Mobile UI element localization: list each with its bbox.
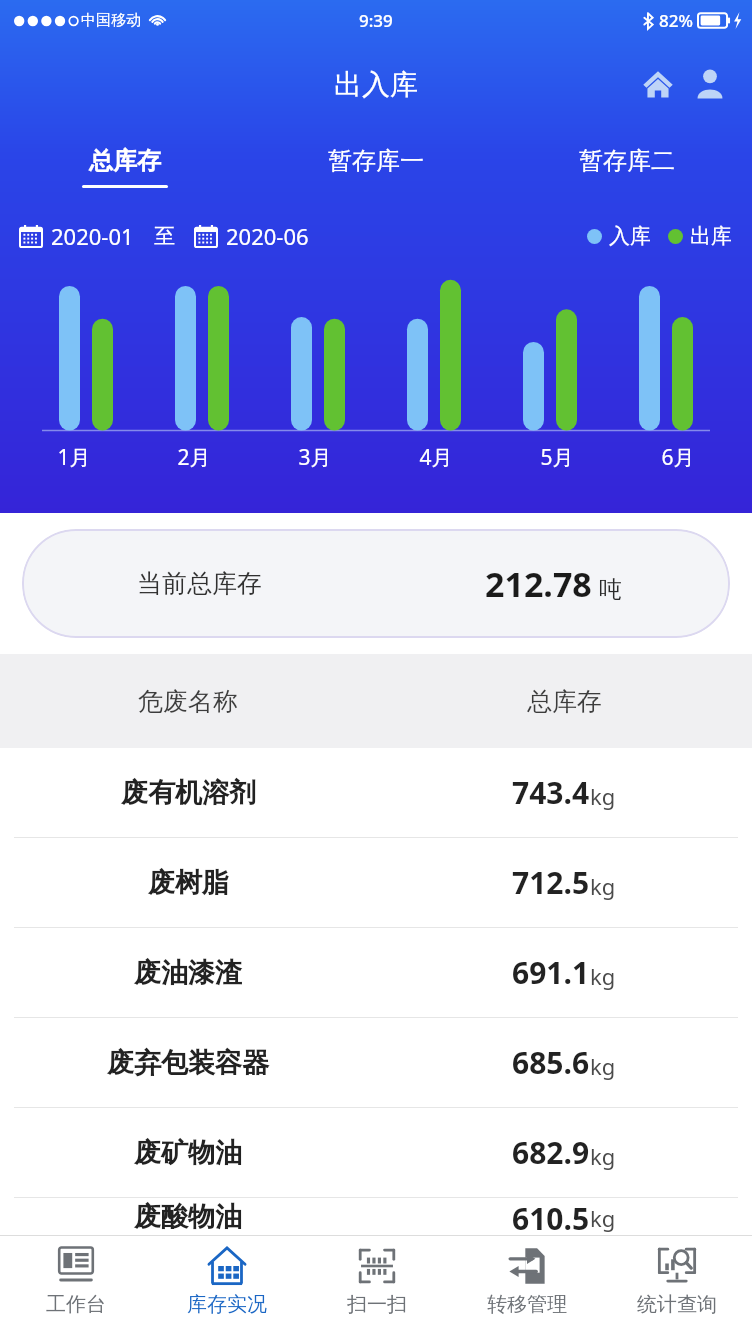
- staticText: kg: [590, 1141, 616, 1171]
- staticText: 682.9: [512, 1132, 590, 1173]
- staticText: 中国移动: [81, 11, 141, 30]
- button[interactable]: 统计查询: [602, 1236, 752, 1334]
- staticText: 6月: [661, 443, 695, 472]
- button[interactable]: 暂存库一: [250, 128, 501, 206]
- staticText: 扫一扫: [347, 1292, 407, 1317]
- staticText: 当前总库存: [137, 568, 262, 599]
- button[interactable]: Profile: [686, 60, 734, 108]
- staticText: 总库存: [89, 146, 161, 176]
- staticText: kg: [590, 781, 616, 811]
- staticText: 743.4: [512, 772, 590, 813]
- staticText: 82%: [659, 9, 693, 32]
- staticText: kg: [590, 961, 616, 991]
- button[interactable]: 工作台: [0, 1236, 151, 1334]
- button[interactable]: 库存实况: [151, 1236, 302, 1334]
- button[interactable]: 扫一扫: [302, 1236, 452, 1334]
- staticText: 691.1: [512, 952, 590, 993]
- staticText: 废酸物油: [134, 1200, 242, 1234]
- staticText: 入库: [609, 223, 651, 249]
- staticText: 统计查询: [637, 1292, 717, 1317]
- button[interactable]: 废酸物油: [0, 1198, 752, 1235]
- staticText: kg: [590, 1051, 616, 1081]
- button[interactable]: Home: [634, 60, 682, 108]
- button[interactable]: 当前总库存: [22, 529, 730, 638]
- staticText: 1月: [57, 443, 91, 472]
- button[interactable]: 废弃包装容器: [0, 1018, 752, 1107]
- staticText: 5月: [540, 443, 574, 472]
- button[interactable]: 总库存: [0, 128, 250, 206]
- staticText: 出库: [690, 223, 732, 249]
- staticText: 废油漆渣: [134, 956, 242, 990]
- button[interactable]: 废矿物油: [0, 1108, 752, 1197]
- staticText: 212.78: [485, 561, 592, 607]
- staticText: 吨: [599, 575, 622, 604]
- staticText: 工作台: [46, 1292, 106, 1317]
- staticText: 废有机溶剂: [121, 776, 256, 810]
- staticText: 暂存库二: [579, 146, 675, 176]
- button[interactable]: 废有机溶剂: [0, 748, 752, 837]
- staticText: 2020-06: [226, 221, 309, 251]
- staticText: 危废名称: [138, 686, 238, 717]
- staticText: 库存实况: [187, 1292, 267, 1317]
- staticText: kg: [590, 1203, 616, 1233]
- button[interactable]: 废油漆渣: [0, 928, 752, 1017]
- button[interactable]: 废树脂: [0, 838, 752, 927]
- staticText: 废弃包装容器: [107, 1046, 269, 1080]
- button[interactable]: 暂存库二: [501, 128, 752, 206]
- staticText: 712.5: [512, 862, 590, 903]
- staticText: 转移管理: [487, 1292, 567, 1317]
- staticText: 暂存库一: [328, 146, 424, 176]
- staticText: 9:39: [359, 9, 393, 32]
- staticText: 685.6: [512, 1042, 590, 1083]
- staticText: 废树脂: [148, 866, 229, 900]
- staticText: 2月: [177, 443, 211, 472]
- staticText: 总库存: [527, 686, 602, 717]
- staticText: kg: [590, 871, 616, 901]
- staticText: 610.5: [512, 1198, 590, 1235]
- staticText: 废矿物油: [134, 1136, 242, 1170]
- staticText: 4月: [419, 443, 453, 472]
- staticText: 3月: [298, 443, 332, 472]
- staticText: 2020-01: [51, 221, 134, 251]
- staticText: 至: [154, 223, 175, 249]
- staticText: 出入库: [334, 67, 418, 102]
- button[interactable]: 转移管理: [452, 1236, 602, 1334]
